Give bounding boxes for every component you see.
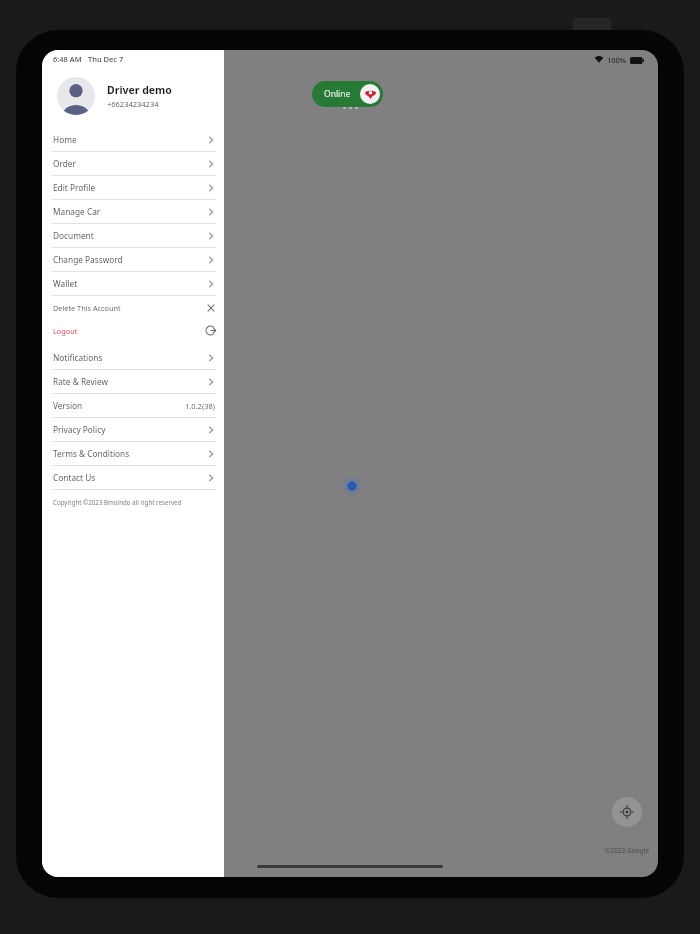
button[interactable]: Privacy Policy	[42, 418, 224, 442]
button[interactable]: Rate & Review	[42, 370, 224, 394]
staticText: Edit Profile	[53, 182, 96, 193]
button[interactable]: Manage Car	[42, 200, 224, 224]
staticText: 1.0.2(38)	[185, 401, 215, 411]
button[interactable]: Edit Profile	[42, 176, 224, 200]
staticText: Rate & Review	[53, 376, 108, 387]
button[interactable]: Order	[42, 152, 224, 176]
staticText: Order	[53, 158, 76, 169]
staticText: Wallet	[53, 278, 78, 289]
staticText: 6:48 AM	[53, 54, 82, 64]
staticText: Version	[53, 400, 83, 411]
staticText: ©2023 Google	[605, 846, 650, 855]
button[interactable]: Version	[42, 394, 224, 418]
button[interactable]: Home	[42, 128, 224, 152]
staticText: Home	[53, 134, 77, 145]
staticText: Notifications	[53, 352, 103, 363]
staticText: Terms & Conditions	[53, 448, 130, 459]
button[interactable]: Logout	[42, 319, 224, 342]
staticText: Document	[53, 230, 94, 241]
staticText: Delete This Account	[53, 303, 121, 313]
button[interactable]: Online	[312, 81, 383, 107]
staticText: Copyright ©2023 Bmoindo all right reserv…	[53, 498, 182, 506]
staticText: Contact Us	[53, 472, 96, 483]
staticText: Driver demo	[107, 83, 172, 97]
button[interactable]: Document	[42, 224, 224, 248]
button[interactable]: Delete This Account	[42, 296, 224, 319]
staticText: Manage Car	[53, 206, 101, 217]
staticText: Privacy Policy	[53, 424, 106, 435]
staticText: Online	[324, 88, 351, 100]
button[interactable]: My location	[612, 797, 642, 827]
staticText: Thu Dec 7	[88, 54, 124, 64]
button[interactable]: Change Password	[42, 248, 224, 272]
button[interactable]: Driver demo	[42, 68, 224, 124]
button[interactable]: Terms & Conditions	[42, 442, 224, 466]
staticText: +66234234234	[107, 99, 159, 109]
staticText: Change Password	[53, 254, 123, 265]
button[interactable]: Notifications	[42, 346, 224, 370]
button[interactable]: Contact Us	[42, 466, 224, 490]
staticText: Logout	[53, 326, 78, 336]
staticText: 100%	[607, 55, 627, 65]
button[interactable]: Wallet	[42, 272, 224, 296]
